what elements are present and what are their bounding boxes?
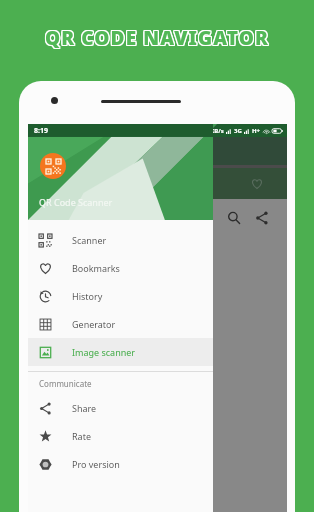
staticText: QR CODE NAVIGATOR (46, 25, 270, 51)
staticText: Scanner (72, 234, 107, 246)
button[interactable]: Scanner (28, 226, 213, 254)
staticText: H+ (252, 127, 261, 135)
button[interactable]: History (28, 282, 213, 310)
button[interactable]: Bookmarks (28, 254, 213, 282)
staticText: ··· 0.3KB/s (195, 127, 224, 135)
staticText: Pro version (72, 458, 120, 470)
staticText: QR CODE NAVIGATOR (45, 25, 269, 51)
staticText: QR CODE NAVIGATOR (45, 26, 269, 52)
staticText: Communicate (39, 378, 92, 389)
staticText: Generator (72, 318, 116, 330)
button[interactable]: Search (227, 211, 241, 225)
staticText: Bookmarks (72, 262, 120, 274)
staticText: History (72, 290, 103, 302)
button[interactable]: Generator (28, 310, 213, 338)
button[interactable]: Pro version (28, 450, 213, 478)
button[interactable]: Image scanner (28, 338, 213, 366)
staticText: QR CODE NAVIGATOR (44, 24, 268, 50)
staticText: 3G (234, 127, 242, 135)
staticText: Image scanner (72, 346, 136, 358)
staticText: Rate (72, 430, 91, 442)
button[interactable]: Share (255, 211, 269, 225)
staticText: QR CODE NAVIGATOR (44, 26, 268, 52)
staticText: QR CODE NAVIGATOR (44, 25, 268, 51)
button[interactable]: Share (28, 394, 213, 422)
staticText: Share (72, 402, 97, 414)
button[interactable]: Rate (28, 422, 213, 450)
staticText: QR CODE NAVIGATOR (45, 24, 269, 50)
staticText: QR CODE NAVIGATOR (46, 24, 270, 50)
staticText: 8:19 (34, 126, 48, 136)
staticText: 8:19 (34, 126, 48, 136)
staticText: QR Code Scanner (39, 196, 113, 208)
staticText: QR CODE NAVIGATOR (46, 26, 270, 52)
